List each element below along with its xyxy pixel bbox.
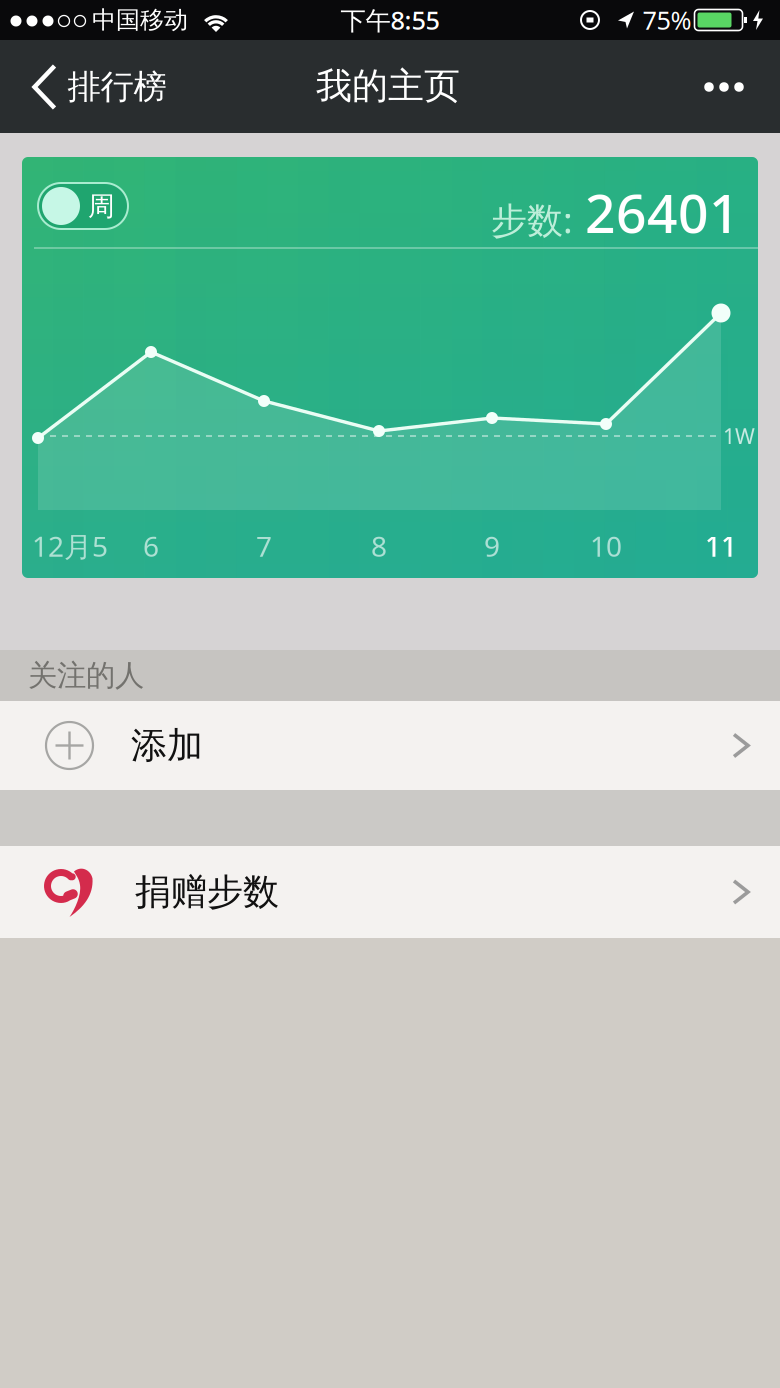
button[interactable]: 更多 [690, 68, 758, 106]
staticText: 中国移动 [92, 5, 188, 35]
staticText: 75% [642, 3, 691, 37]
staticText: 我的主页 [316, 64, 460, 108]
staticText: 8 [371, 527, 387, 565]
button[interactable]: 周切换 [38, 183, 128, 229]
button[interactable]: 捐赠步数 [0, 846, 780, 938]
button[interactable]: 排行榜 [13, 40, 166, 133]
staticText: 下午8:55 [340, 3, 439, 37]
staticText: 6 [143, 527, 159, 565]
staticText: 12月5 [32, 527, 108, 565]
staticText: 9 [484, 527, 500, 565]
staticText: 关注的人 [28, 657, 144, 693]
staticText: 10 [590, 527, 622, 565]
staticText: 步数: [491, 196, 573, 243]
staticText: 排行榜 [67, 66, 166, 107]
button[interactable]: 添加 [0, 701, 780, 790]
staticText: 26401 [585, 177, 740, 248]
staticText: 添加 [131, 723, 203, 768]
staticText: 7 [256, 527, 272, 565]
staticText: 捐赠步数 [135, 870, 279, 914]
staticText: 1W [723, 422, 755, 450]
staticText: 11 [705, 527, 737, 565]
staticText: 周 [88, 190, 115, 223]
